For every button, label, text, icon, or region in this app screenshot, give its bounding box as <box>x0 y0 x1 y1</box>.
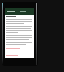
button[interactable] <box>5 8 34 15</box>
